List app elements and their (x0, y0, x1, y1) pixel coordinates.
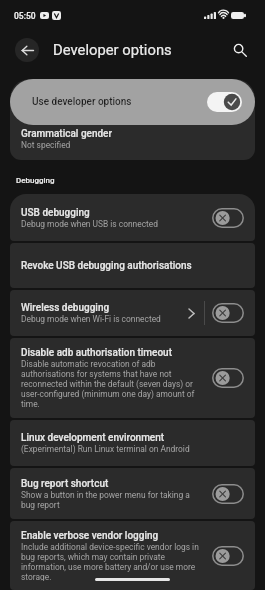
staticText: Linux development environment (21, 432, 165, 444)
staticText: Enable verbose vendor logging (21, 530, 159, 542)
staticText: Disable automatic revocation of adb auth… (21, 359, 204, 409)
button[interactable]: Enable verbose vendor logging (10, 521, 255, 590)
button[interactable]: Wireless debugging (10, 290, 255, 336)
staticText: Disable adb authorisation timeout (21, 347, 173, 359)
staticText: Debugging (16, 176, 55, 185)
staticText: Debug mode when USB is connected (21, 219, 158, 229)
staticText: (Experimental) Run Linux terminal on And… (21, 444, 190, 454)
button[interactable]: Grammatical gender (10, 125, 255, 160)
button[interactable]: Revoke USB debugging authorisations (10, 243, 255, 288)
button[interactable]: Bug report shortcut (10, 468, 255, 519)
staticText: Show a button in the power menu for taki… (21, 490, 204, 510)
staticText: Bug report shortcut (21, 478, 109, 490)
staticText: Debug mode when Wi-Fi is connected (21, 314, 161, 324)
staticText: Include additional device-specific vendo… (21, 542, 204, 581)
staticText: Use developer options (32, 96, 132, 108)
button[interactable]: Disable adb authorisation timeout (10, 338, 255, 418)
staticText: Not specified (21, 140, 71, 150)
button[interactable]: USB debugging (10, 194, 255, 241)
button[interactable]: Use developer options (10, 79, 255, 125)
button[interactable]: Search (229, 39, 251, 61)
staticText: Wireless debugging (21, 302, 110, 314)
button[interactable]: Back (15, 38, 39, 62)
staticText: 05:50 (14, 11, 36, 21)
staticText: USB debugging (21, 207, 90, 219)
staticText: Revoke USB debugging authorisations (21, 260, 192, 272)
button[interactable]: Linux development environment (10, 420, 255, 466)
staticText: Grammatical gender (21, 128, 113, 140)
staticText: Developer options (53, 41, 172, 58)
